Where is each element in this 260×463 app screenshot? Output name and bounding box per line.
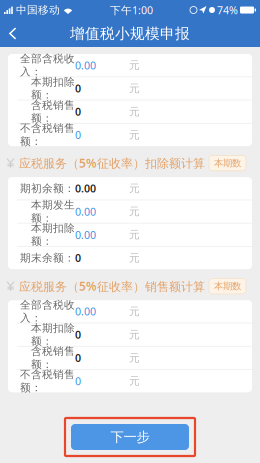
staticText: 不含税销售额： [20,368,75,394]
staticText: 本期数 [214,280,241,292]
staticText: 74% [217,3,238,17]
staticText: 元 [129,82,140,95]
staticText: 应税服务（5%征收率）销售额计算 [19,278,205,294]
staticText: 0 [75,351,81,365]
staticText: 0.00 [75,204,96,219]
staticText: 含税销售额： [31,345,75,371]
staticText: 元 [129,105,140,118]
staticText: 本期数 [214,157,241,169]
staticText: 0 [75,81,81,96]
staticText: 0.00 [75,228,96,242]
staticText: 不含税销售额： [20,122,75,148]
staticText: 期初余额： [20,182,75,195]
staticText: 元 [129,205,140,218]
staticText: 元 [129,251,140,264]
staticText: 0 [75,105,81,119]
staticText: 全部含税收入： [20,298,75,324]
staticText: 元 [129,128,140,141]
staticText: 期末余额： [20,251,75,264]
staticText: 应税服务（5%征收率）扣除额计算 [19,155,205,171]
staticText: 本期发生额： [31,198,75,225]
staticText: 0 [75,128,81,142]
staticText: 本期扣除额： [31,321,75,348]
staticText: 增值税小规模申报 [70,24,190,42]
button[interactable]: 下一步 [71,424,189,450]
staticText: 元 [129,374,140,388]
staticText: 元 [129,305,140,318]
staticText: 中国移动 [16,3,60,16]
staticText: 下午1:00 [110,3,153,17]
staticText: 元 [129,328,140,341]
staticText: 0.00 [75,181,96,195]
staticText: 0 [75,374,81,388]
staticText: 下一步 [110,429,149,445]
staticText: 元 [129,182,140,195]
staticText: 元 [129,351,140,364]
staticText: 0 [75,328,81,342]
staticText: 0.00 [75,304,96,319]
staticText: 0 [75,251,81,265]
staticText: 全部含税收入： [20,52,75,78]
staticText: 元 [129,228,140,241]
staticText: 本期扣除额： [31,222,75,248]
staticText: 0.00 [75,58,96,72]
staticText: 含税销售额： [31,98,75,125]
staticText: 元 [129,59,140,72]
button[interactable]: 返回 [0,20,25,47]
staticText: 本期扣除额： [31,75,75,101]
